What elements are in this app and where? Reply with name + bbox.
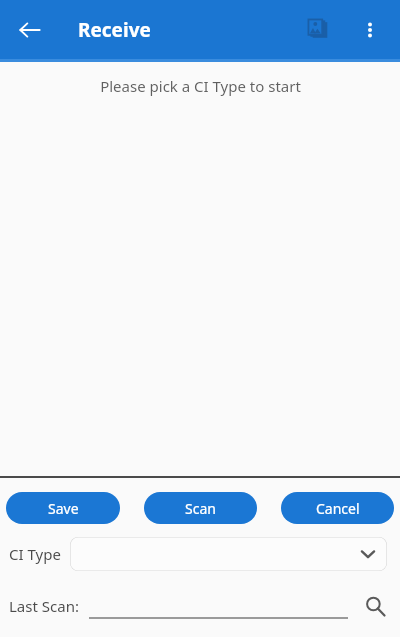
staticText: Save [48, 499, 79, 518]
staticText: Receive [78, 17, 151, 43]
button[interactable]: Search [358, 589, 392, 623]
staticText: Scan [185, 499, 216, 518]
button[interactable]: Save [6, 492, 120, 524]
button[interactable]: Scan [144, 492, 257, 524]
button[interactable]: Collections [298, 8, 342, 52]
staticText: Please pick a CI Type to start [100, 76, 301, 96]
button[interactable]: Cancel [281, 492, 394, 524]
button[interactable]: CI Type dropdown [70, 537, 387, 571]
button[interactable] [89, 593, 348, 619]
staticText: Cancel [316, 499, 360, 518]
staticText: Last Scan: [9, 596, 79, 616]
staticText: CI Type [9, 544, 61, 564]
button[interactable]: Back [8, 8, 52, 52]
button[interactable]: More options [348, 8, 392, 52]
